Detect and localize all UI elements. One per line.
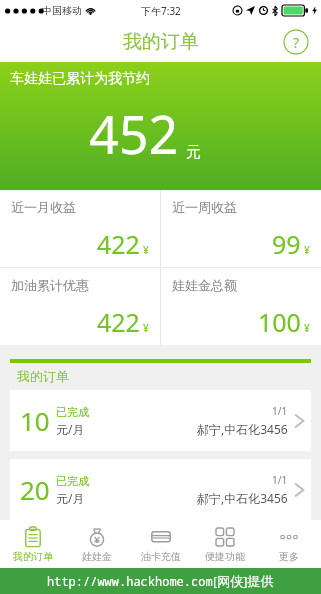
- staticText: 元/月: [56, 421, 85, 437]
- staticText: 下午7:32: [141, 4, 181, 18]
- staticText: 422: [97, 227, 140, 261]
- staticText: 更多: [279, 550, 299, 563]
- staticText: 99: [272, 227, 301, 261]
- button[interactable]: 10: [10, 390, 311, 451]
- staticText: http://www.hackhome.com: [47, 573, 213, 589]
- staticText: 郝宁,中石化3456: [197, 421, 288, 437]
- staticText: 娃娃金总额: [172, 277, 237, 293]
- staticText: 便捷功能: [205, 550, 245, 563]
- staticText: 100: [258, 305, 301, 339]
- button[interactable]: 娃娃金: [65, 520, 129, 568]
- button[interactable]: 近一周收益: [161, 190, 321, 267]
- staticText: ¥: [143, 321, 149, 335]
- button[interactable]: 近一月收益: [0, 190, 160, 267]
- staticText: 422: [97, 305, 140, 339]
- staticText: 20: [20, 472, 50, 507]
- button[interactable]: 娃娃金总额: [161, 268, 321, 345]
- staticText: ?: [293, 33, 300, 52]
- staticText: 郝宁,中石化3456: [197, 490, 288, 506]
- staticText: [网侠]提供: [213, 572, 274, 590]
- button[interactable]: 我的订单: [0, 520, 65, 568]
- staticText: ¥: [304, 321, 310, 335]
- button[interactable]: 20: [10, 459, 311, 520]
- staticText: 我的订单: [17, 368, 69, 384]
- staticText: 1/1: [272, 473, 288, 487]
- staticText: 452: [89, 98, 179, 169]
- button[interactable]: Help: [283, 29, 309, 55]
- staticText: 我的订单: [123, 30, 199, 54]
- staticText: ¥: [143, 243, 149, 257]
- staticText: 近一月收益: [11, 199, 76, 215]
- staticText: 近一周收益: [172, 199, 237, 215]
- staticText: ¥: [304, 243, 310, 257]
- staticText: 1/1: [272, 404, 288, 418]
- staticText: 元/月: [56, 490, 85, 506]
- staticText: 中国移动: [42, 4, 82, 17]
- staticText: 元: [186, 143, 201, 162]
- staticText: 10: [20, 403, 50, 438]
- button[interactable]: 油卡充值: [129, 520, 193, 568]
- staticText: 油卡充值: [141, 550, 181, 563]
- staticText: 已完成: [56, 405, 89, 419]
- button[interactable]: 加油累计优惠: [0, 268, 160, 345]
- staticText: 我的订单: [13, 550, 53, 563]
- staticText: 车娃娃已累计为我节约: [10, 70, 150, 88]
- button[interactable]: 更多: [257, 520, 321, 568]
- button[interactable]: 便捷功能: [193, 520, 257, 568]
- staticText: 娃娃金: [82, 550, 112, 563]
- staticText: 已完成: [56, 474, 89, 488]
- staticText: 加油累计优惠: [11, 277, 89, 293]
